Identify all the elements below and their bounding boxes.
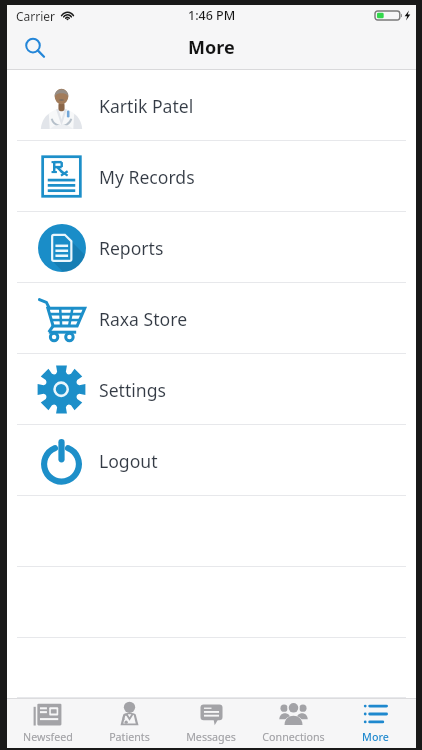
- button[interactable]: Settings: [7, 354, 416, 425]
- staticText: Logout: [99, 449, 158, 473]
- button[interactable]: Connections: [252, 699, 334, 748]
- button[interactable]: Messages: [170, 699, 252, 748]
- staticText: Raxa Store: [99, 307, 188, 331]
- button[interactable]: Raxa Store: [7, 283, 416, 354]
- button[interactable]: My Records: [7, 141, 416, 212]
- button[interactable]: Search: [17, 30, 53, 66]
- button[interactable]: Patients: [88, 699, 170, 748]
- staticText: My Records: [99, 165, 195, 189]
- staticText: Connections: [262, 730, 325, 745]
- staticText: Patients: [109, 730, 150, 745]
- button[interactable]: Kartik Patel: [7, 70, 416, 141]
- staticText: More: [188, 35, 235, 60]
- staticText: Kartik Patel: [99, 94, 194, 118]
- button[interactable]: Newsfeed: [7, 699, 88, 748]
- staticText: Carrier: [16, 8, 56, 24]
- button[interactable]: Reports: [7, 212, 416, 283]
- staticText: Newsfeed: [23, 730, 73, 745]
- staticText: 1:46 PM: [188, 7, 236, 24]
- staticText: Settings: [99, 378, 166, 402]
- staticText: More: [362, 730, 389, 745]
- button[interactable]: Logout: [7, 425, 416, 496]
- staticText: Messages: [186, 730, 236, 745]
- button[interactable]: More: [334, 699, 416, 748]
- staticText: Reports: [99, 236, 164, 260]
